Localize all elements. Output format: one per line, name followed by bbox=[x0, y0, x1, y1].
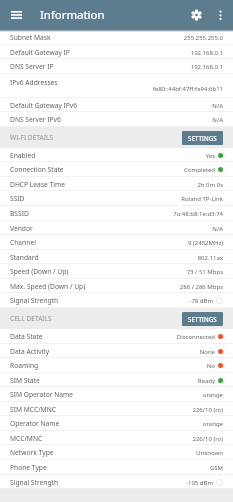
staticText: Vendor bbox=[10, 224, 33, 233]
button[interactable]: IPv6 Addresses bbox=[0, 74, 233, 98]
button[interactable]: SIM MCC/MNC bbox=[0, 402, 233, 416]
staticText: 255.255.255.0 bbox=[55, 34, 223, 42]
button[interactable]: Speed (Down / Up) bbox=[0, 264, 233, 279]
staticText: Enabled bbox=[10, 151, 36, 160]
staticText: SIM Operator Name bbox=[10, 390, 74, 399]
staticText: N/A bbox=[37, 225, 223, 233]
staticText: WI-FI DETAILS bbox=[10, 133, 54, 142]
staticText: CELL DETAILS bbox=[10, 314, 52, 323]
staticText: 226/10 (ro) bbox=[60, 406, 223, 414]
staticText: 9 (2452MHz) bbox=[40, 239, 223, 247]
button[interactable]: Default Gateway IPv6 bbox=[0, 98, 233, 112]
staticText: 192.168.0.1 bbox=[74, 49, 223, 57]
staticText: SIM MCC/MNC bbox=[10, 405, 56, 414]
staticText: Signal Strength bbox=[10, 296, 59, 305]
staticText: Information bbox=[40, 7, 105, 23]
staticText: Max. Speed (Down / Up) bbox=[10, 282, 86, 291]
staticText: Signal Strength bbox=[10, 478, 59, 487]
staticText: 226/10 (ro) bbox=[47, 435, 223, 443]
button[interactable]: Menu bbox=[2, 1, 30, 29]
staticText: -105 dBm bbox=[63, 479, 213, 487]
staticText: Disconnected bbox=[47, 333, 215, 341]
staticText: Completed bbox=[68, 166, 215, 174]
staticText: Unknown bbox=[58, 449, 223, 457]
staticText: 7a:48:b8:1e:d3:74 bbox=[33, 210, 223, 218]
staticText: SETTINGS bbox=[188, 134, 217, 142]
staticText: orange bbox=[64, 420, 223, 428]
button[interactable]: Signal Strength bbox=[0, 293, 233, 308]
staticText: orange bbox=[78, 391, 223, 399]
button[interactable]: Channel bbox=[0, 235, 233, 250]
staticText: Data State bbox=[10, 332, 43, 341]
staticText: Channel bbox=[10, 238, 36, 247]
button[interactable]: Network Type bbox=[0, 445, 233, 460]
staticText: Operator Name bbox=[10, 419, 60, 428]
button[interactable]: Subnet Mask bbox=[0, 30, 233, 45]
staticText: 2h 0m 0s bbox=[70, 181, 223, 189]
staticText: Network Type bbox=[10, 448, 54, 457]
button[interactable]: SIM State bbox=[0, 373, 233, 387]
staticText: 802.11ax bbox=[43, 254, 223, 262]
staticText: 73 / 51 Mbps bbox=[73, 268, 223, 276]
staticText: Connection State bbox=[10, 165, 64, 174]
button[interactable]: Standard bbox=[0, 250, 233, 264]
staticText: Speed (Down / Up) bbox=[10, 267, 69, 276]
staticText: Data Activity bbox=[10, 347, 50, 356]
button[interactable]: SETTINGS bbox=[182, 131, 223, 145]
staticText: Subnet Mask bbox=[10, 33, 51, 42]
staticText: MCC/MNC bbox=[10, 434, 43, 443]
button[interactable]: Data Activity bbox=[0, 344, 233, 358]
button[interactable]: Data State bbox=[0, 329, 233, 344]
staticText: Default Gateway IP bbox=[10, 48, 70, 57]
button[interactable]: Enabled bbox=[0, 148, 233, 162]
staticText: None bbox=[54, 348, 215, 356]
staticText: SIM State bbox=[10, 376, 40, 385]
staticText: Ready bbox=[44, 377, 215, 385]
staticText: Phone Type bbox=[10, 463, 47, 472]
button[interactable]: Max. Speed (Down / Up) bbox=[0, 279, 233, 293]
staticText: DNS Server IPv6 bbox=[10, 115, 61, 124]
button[interactable]: DNS Server IP bbox=[0, 59, 233, 74]
staticText: N/A bbox=[82, 102, 223, 110]
staticText: Roland TP-Link bbox=[29, 195, 223, 203]
button[interactable]: MCC/MNC bbox=[0, 431, 233, 445]
button[interactable]: Signal Strength bbox=[0, 475, 233, 489]
button[interactable]: BSSID bbox=[0, 206, 233, 221]
button[interactable]: SSID bbox=[0, 191, 233, 206]
staticText: Default Gateway IPv6 bbox=[10, 101, 78, 110]
staticText: SSID bbox=[10, 194, 25, 203]
staticText: N/A bbox=[65, 116, 223, 124]
button[interactable]: SETTINGS bbox=[182, 312, 223, 326]
button[interactable]: Phone Type bbox=[0, 460, 233, 475]
button[interactable]: Roaming bbox=[0, 358, 233, 373]
button[interactable]: SIM Operator Name bbox=[0, 387, 233, 402]
staticText: 192.168.0.1 bbox=[58, 63, 223, 71]
button[interactable]: Settings bbox=[182, 1, 210, 29]
staticText: No bbox=[43, 362, 215, 370]
staticText: BSSID bbox=[10, 209, 29, 218]
button[interactable]: Default Gateway IP bbox=[0, 45, 233, 59]
button[interactable]: Connection State bbox=[0, 162, 233, 177]
staticText: IPv6 Addresses bbox=[10, 78, 58, 87]
staticText: Standard bbox=[10, 253, 39, 262]
staticText: fe80::44bf:47ff:fe94:6b11 bbox=[152, 85, 223, 93]
button[interactable]: More options bbox=[207, 2, 233, 29]
staticText: -78 dBm bbox=[63, 297, 213, 305]
staticText: DNS Server IP bbox=[10, 62, 54, 71]
button[interactable]: DHCP Lease Time bbox=[0, 177, 233, 191]
staticText: GSM bbox=[51, 464, 223, 472]
staticText: SETTINGS bbox=[188, 315, 217, 323]
button[interactable]: Operator Name bbox=[0, 416, 233, 431]
staticText: 286 / 286 Mbps bbox=[90, 283, 223, 291]
staticText: Roaming bbox=[10, 361, 39, 370]
staticText: DHCP Lease Time bbox=[10, 180, 66, 189]
button[interactable]: Vendor bbox=[0, 221, 233, 235]
button[interactable]: DNS Server IPv6 bbox=[0, 112, 233, 127]
staticText: Yes bbox=[40, 152, 215, 160]
